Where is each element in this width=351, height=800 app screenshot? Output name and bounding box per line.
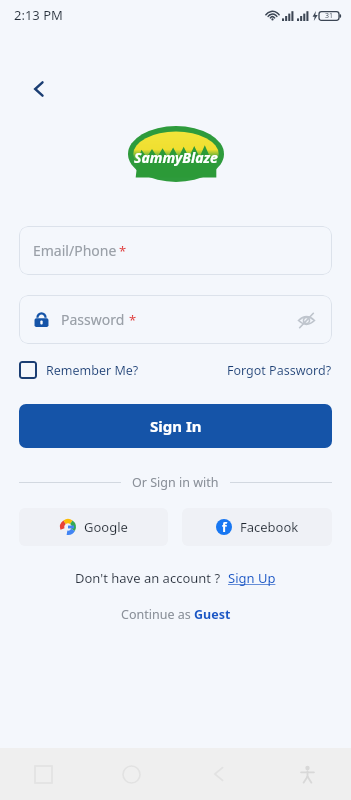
staticText: *	[129, 311, 137, 329]
staticText: Email/Phone	[33, 241, 117, 260]
staticText: Sign Up	[228, 569, 276, 587]
staticText: Facebook	[240, 518, 299, 536]
staticText: Remember Me?	[46, 362, 139, 379]
button[interactable]: Remember Me?	[19, 361, 139, 379]
button[interactable]: f	[182, 508, 332, 546]
staticText: Continue as	[121, 606, 194, 623]
button[interactable]: Show password	[294, 308, 318, 332]
staticText: *	[119, 242, 127, 260]
staticText: Google	[84, 518, 128, 536]
button[interactable]: Forgot Password?	[227, 362, 332, 379]
button[interactable]: Sign Up	[228, 569, 276, 587]
staticText: Guest	[194, 606, 231, 623]
button[interactable]: Sign In	[19, 404, 332, 448]
staticText: Sign In	[150, 416, 202, 436]
button[interactable]: Back	[22, 72, 56, 106]
button[interactable]: Email/Phone	[19, 226, 332, 275]
button[interactable]: Continue as	[121, 606, 231, 623]
button[interactable]: Password	[19, 295, 332, 344]
staticText: 31	[325, 11, 334, 21]
staticText: Forgot Password?	[227, 362, 332, 379]
staticText: f	[222, 519, 227, 535]
staticText: Password	[61, 310, 125, 329]
staticText: SammyBlaze	[134, 148, 218, 167]
staticText: Or Sign in with	[132, 474, 219, 491]
staticText: Don't have an account ?	[75, 569, 221, 587]
staticText: 2:13 PM	[14, 6, 63, 24]
button[interactable]: Google	[19, 508, 168, 546]
